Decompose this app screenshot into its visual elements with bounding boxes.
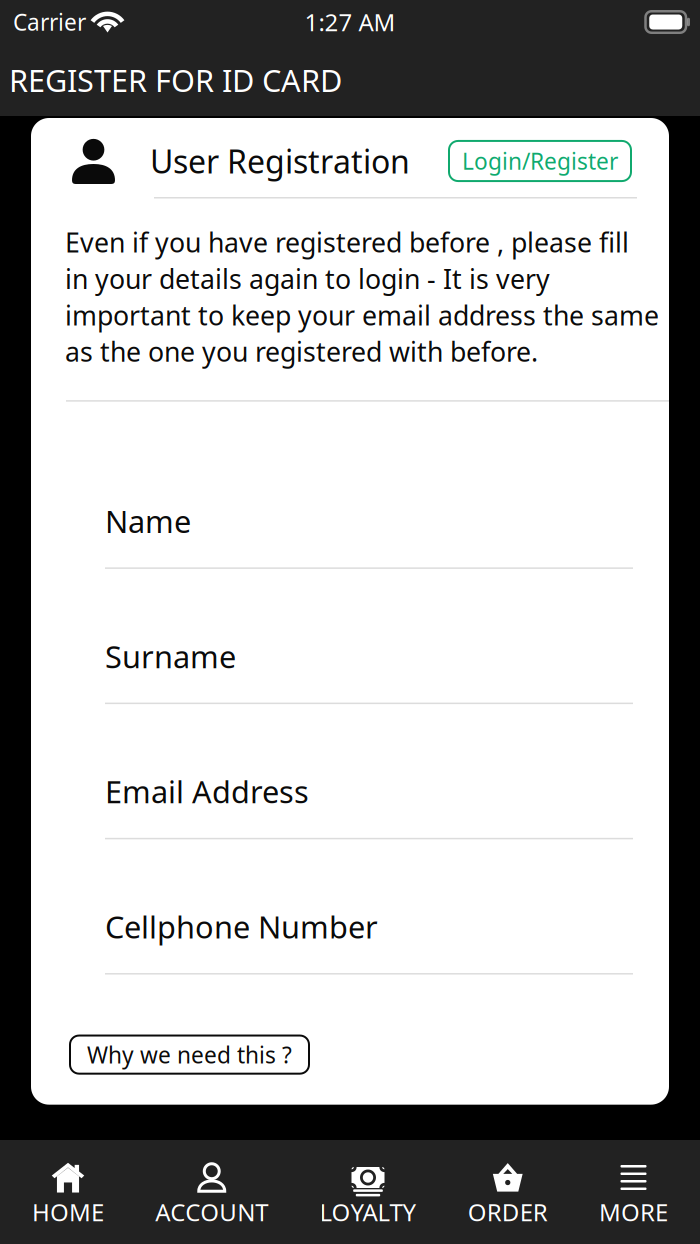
staticText: 1:27 AM	[304, 6, 395, 38]
staticText: MORE	[599, 1196, 668, 1228]
staticText: Even if you have registered before , ple…	[65, 224, 659, 369]
staticText: Login/Register	[462, 146, 618, 176]
button[interactable]: LOYALTY	[319, 1162, 416, 1228]
button[interactable]: Login/Register	[449, 141, 631, 181]
button[interactable]: ORDER	[468, 1162, 548, 1228]
staticText: Cellphone Number	[105, 906, 378, 947]
button[interactable]: Why we need this ?	[70, 1036, 309, 1074]
staticText: ACCOUNT	[155, 1196, 268, 1228]
staticText: Surname	[105, 636, 236, 677]
button[interactable]: HOME	[32, 1162, 104, 1228]
staticText: REGISTER FOR ID CARD	[9, 60, 342, 100]
staticText: Email Address	[105, 771, 309, 812]
staticText: Name	[105, 501, 191, 541]
staticText: LOYALTY	[319, 1196, 416, 1228]
staticText: Why we need this ?	[87, 1040, 292, 1070]
staticText: ORDER	[468, 1196, 548, 1228]
button[interactable]: MORE	[599, 1162, 668, 1228]
button[interactable]: ACCOUNT	[155, 1162, 268, 1228]
staticText: Carrier	[13, 7, 86, 37]
staticText: HOME	[32, 1196, 104, 1228]
staticText: User Registration	[150, 140, 410, 182]
